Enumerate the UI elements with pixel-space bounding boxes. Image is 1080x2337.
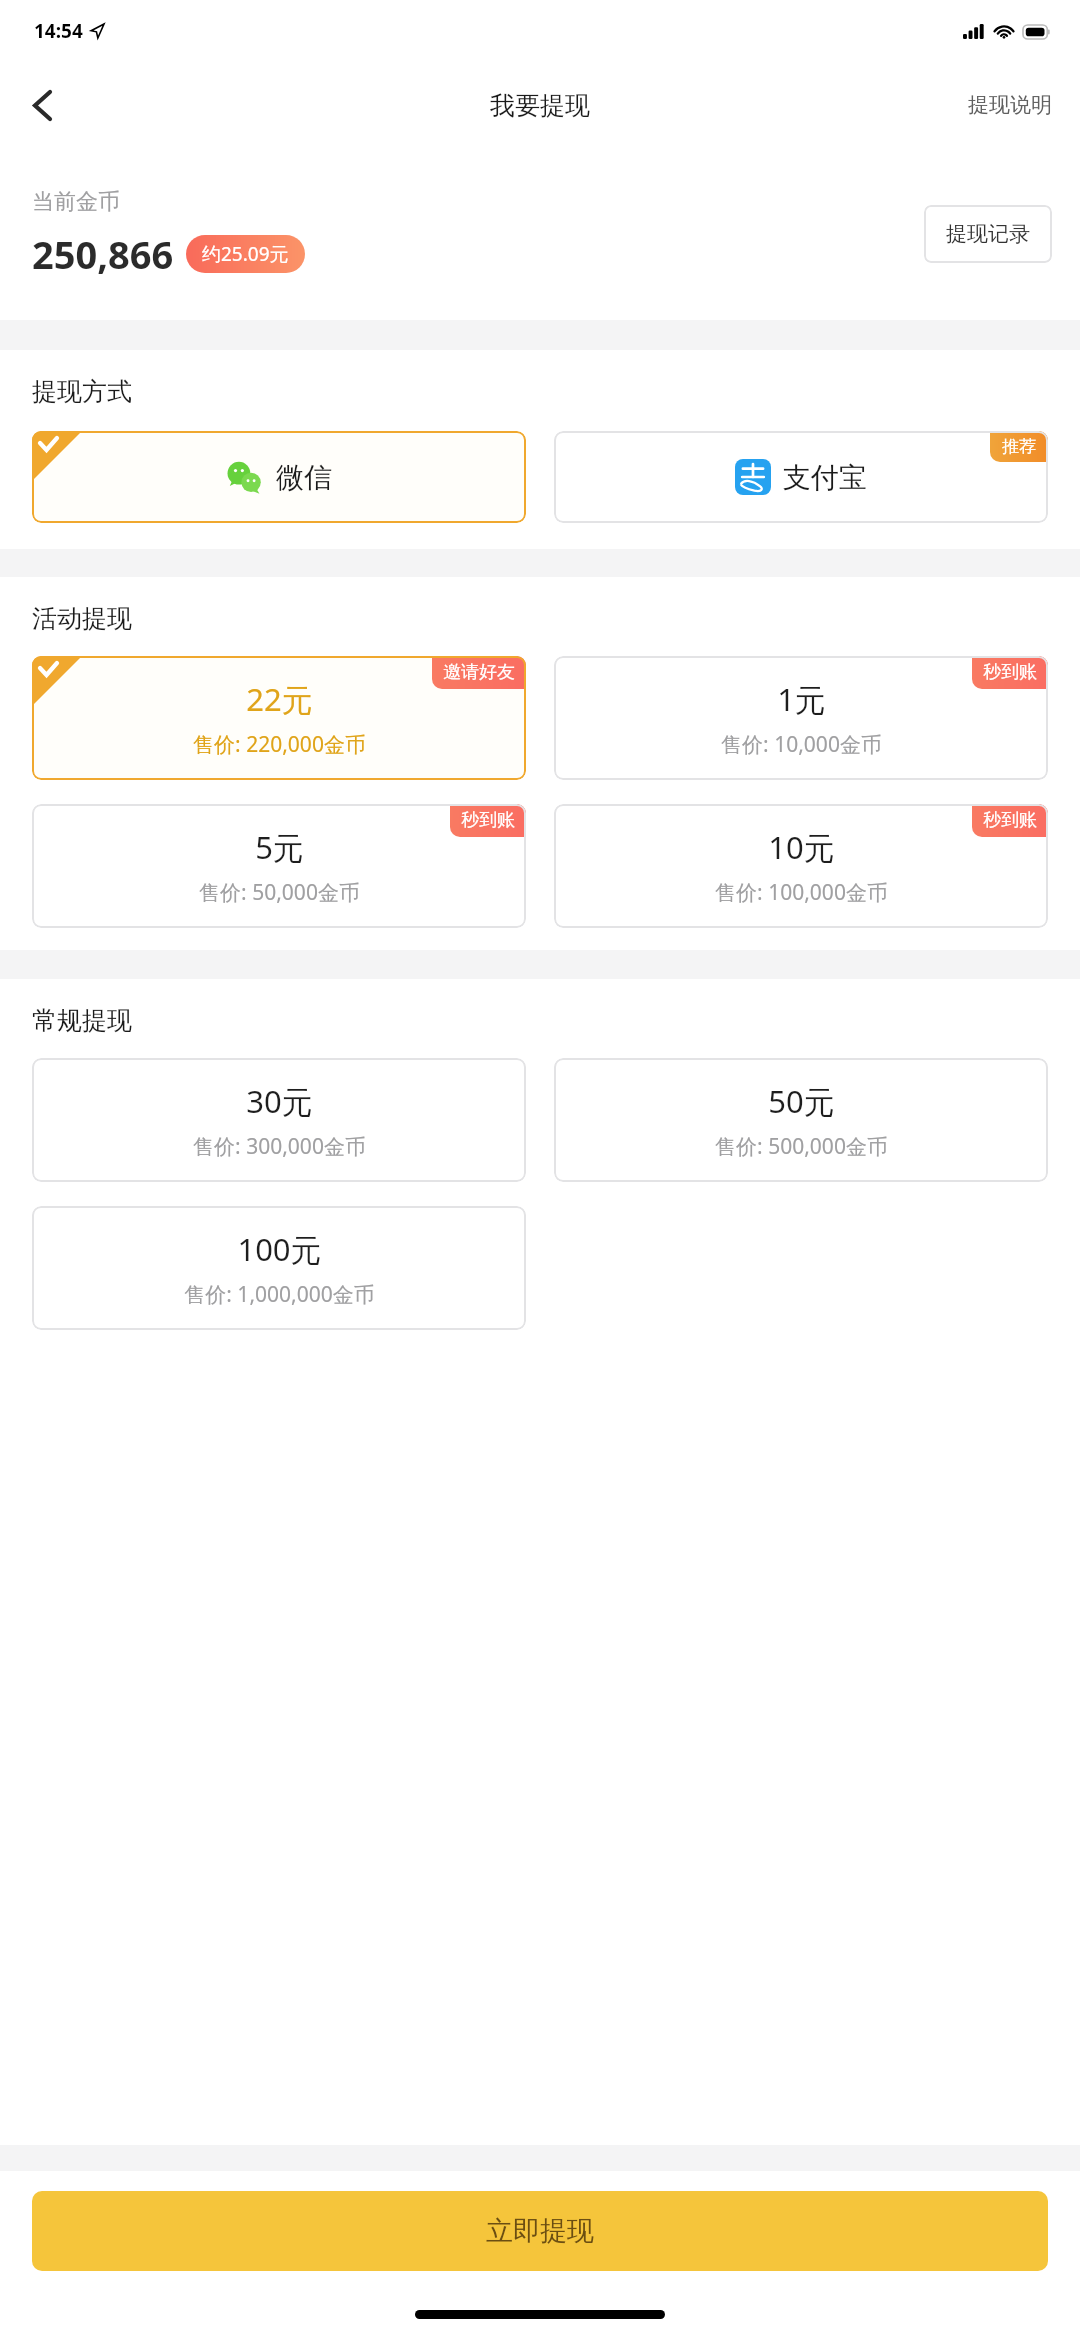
staticText: 10元 [768, 826, 835, 868]
staticText: 活动提现 [32, 603, 132, 634]
button[interactable]: 100元 [32, 1206, 526, 1330]
staticText: 提现说明 [968, 92, 1052, 118]
staticText: 提现方式 [32, 376, 132, 407]
staticText: 秒到账 [983, 661, 1037, 684]
button[interactable]: 22元 [32, 656, 526, 780]
staticText: 约25.09元 [202, 241, 289, 267]
staticText: 立即提现 [486, 2214, 594, 2248]
button[interactable]: 提现记录 [924, 205, 1052, 263]
staticText: 当前金币 [32, 188, 120, 216]
staticText: 22元 [246, 678, 313, 720]
button[interactable]: 30元 [32, 1058, 526, 1182]
staticText: 售价: 10,000金币 [721, 730, 882, 759]
staticText: 微信 [276, 460, 332, 495]
staticText: 50元 [768, 1080, 835, 1122]
staticText: 邀请好友 [443, 661, 515, 684]
staticText: 100元 [237, 1228, 322, 1270]
staticText: 14:54 [34, 18, 83, 44]
button[interactable]: 支付宝 [554, 431, 1048, 523]
staticText: 售价: 50,000金币 [199, 878, 360, 907]
staticText: 售价: 500,000金币 [715, 1132, 888, 1161]
staticText: 常规提现 [32, 1005, 132, 1036]
button[interactable]: 提现说明 [960, 82, 1060, 128]
staticText: 推荐 [1002, 436, 1036, 457]
button[interactable]: 微信 [32, 431, 526, 523]
staticText: 售价: 100,000金币 [715, 878, 888, 907]
button[interactable]: 10元 [554, 804, 1048, 928]
button[interactable]: 立即提现 [32, 2191, 1048, 2271]
button[interactable]: 5元 [32, 804, 526, 928]
staticText: 秒到账 [461, 809, 515, 832]
staticText: 30元 [246, 1080, 313, 1122]
button[interactable]: 50元 [554, 1058, 1048, 1182]
staticText: 250,866 [32, 228, 174, 280]
staticText: 售价: 300,000金币 [193, 1132, 366, 1161]
staticText: 1元 [777, 678, 826, 720]
staticText: 5元 [255, 826, 304, 868]
staticText: 我要提现 [490, 90, 590, 121]
staticText: 售价: 220,000金币 [193, 730, 366, 759]
staticText: 提现记录 [946, 221, 1030, 247]
button[interactable]: Back [10, 73, 74, 137]
staticText: 支付宝 [783, 460, 867, 495]
button[interactable]: 1元 [554, 656, 1048, 780]
staticText: 秒到账 [983, 809, 1037, 832]
staticText: 售价: 1,000,000金币 [184, 1280, 375, 1309]
